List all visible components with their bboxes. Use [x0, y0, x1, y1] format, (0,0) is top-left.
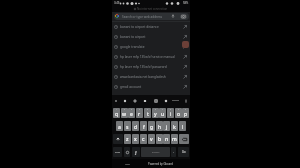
- staticText: 6: [155, 108, 157, 111]
- staticText: g: [150, 124, 154, 131]
- staticText: .: [173, 150, 174, 154]
- button[interactable]: v: [148, 134, 155, 144]
- button[interactable]: banani to airport: [112, 32, 190, 42]
- staticText: 9: [178, 108, 180, 111]
- staticText: 3:49: [114, 1, 120, 5]
- button[interactable]: Go: [178, 147, 189, 157]
- button[interactable]: 5: [144, 108, 151, 118]
- button[interactable]: google translate: [112, 42, 190, 52]
- staticText: 3: [131, 108, 133, 111]
- staticText: w: [122, 111, 127, 118]
- staticText: v: [150, 136, 153, 143]
- staticText: r: [138, 111, 141, 118]
- button[interactable]: h: [156, 121, 163, 131]
- button[interactable]: j: [163, 121, 170, 131]
- staticText: t: [147, 111, 149, 118]
- button[interactable]: 8: [167, 108, 174, 118]
- button[interactable]: www.bankasia.net bangladesh: [112, 72, 190, 82]
- staticText: www.bankasia.net bangladesh: [120, 75, 166, 79]
- button[interactable]: Keyboard tool 0: [114, 99, 118, 103]
- button[interactable]: n: [163, 134, 170, 144]
- button[interactable]: More options: [184, 99, 188, 103]
- staticText: English: [152, 151, 160, 154]
- staticText: h: [158, 124, 162, 131]
- staticText: b: [158, 136, 162, 143]
- staticText: l: [182, 124, 184, 131]
- button[interactable]: z: [124, 134, 131, 144]
- staticText: 8: [170, 108, 172, 111]
- button[interactable]: Keyboard tool 2: [133, 99, 137, 103]
- button[interactable]: gmail account: [112, 82, 190, 92]
- button[interactable]: c: [140, 134, 147, 144]
- button[interactable]: Keyboard tool 3: [143, 99, 147, 103]
- button[interactable]: x: [132, 134, 139, 144]
- button[interactable]: Voice search: [171, 14, 175, 18]
- staticText: 5: [147, 108, 149, 111]
- button[interactable]: Google Lens: [181, 14, 186, 19]
- button[interactable]: 1: [113, 108, 120, 118]
- button[interactable]: Symbols: [113, 147, 122, 157]
- button[interactable]: hp laser mfp 135w/cf password: [112, 62, 190, 72]
- staticText: p: [184, 111, 188, 118]
- button[interactable]: Emoji: [124, 147, 130, 157]
- staticText: e: [130, 111, 133, 118]
- button[interactable]: k: [171, 121, 178, 131]
- staticText: gmail account: [120, 85, 142, 89]
- button[interactable]: Backspace: [179, 134, 189, 144]
- button[interactable]: 2: [121, 108, 128, 118]
- staticText: j: [166, 124, 168, 131]
- staticText: ƒ: [135, 150, 137, 155]
- staticText: 58%: [183, 1, 189, 5]
- staticText: No internet connection: [137, 7, 168, 11]
- button[interactable]: m: [171, 134, 178, 144]
- staticText: hp laser mfp 135w/cf service manual: [120, 55, 175, 59]
- staticText: banani to airport: [120, 35, 146, 39]
- staticText: s: [126, 124, 129, 131]
- staticText: a: [118, 124, 121, 131]
- button[interactable]: 7: [159, 108, 166, 118]
- staticText: q: [115, 111, 119, 118]
- staticText: n: [165, 136, 169, 143]
- button[interactable]: hp laser mfp 135w/cf service manual: [112, 52, 190, 62]
- staticText: c: [142, 136, 145, 143]
- button[interactable]: f: [140, 121, 147, 131]
- button[interactable]: 3: [128, 108, 135, 118]
- button[interactable]: d: [132, 121, 139, 131]
- staticText: y: [154, 111, 157, 118]
- button[interactable]: a: [116, 121, 123, 131]
- staticText: Search or type web address: [122, 15, 163, 19]
- button[interactable]: Keyboard tool 1: [123, 99, 127, 103]
- button[interactable]: banani to airport distance: [112, 22, 190, 32]
- staticText: f: [143, 124, 145, 131]
- staticText: k: [173, 124, 176, 131]
- button[interactable]: 4: [136, 108, 143, 118]
- button[interactable]: b: [156, 134, 163, 144]
- staticText: d: [134, 124, 138, 131]
- staticText: m: [172, 136, 177, 143]
- button[interactable]: Handwriting: [132, 147, 140, 157]
- button[interactable]: s: [124, 121, 131, 131]
- staticText: ?123: [115, 151, 120, 154]
- staticText: 2: [124, 108, 126, 111]
- staticText: 0: [185, 108, 187, 111]
- button[interactable]: 0: [182, 108, 189, 118]
- button[interactable]: l: [179, 121, 186, 131]
- button[interactable]: Period: [171, 147, 176, 157]
- button[interactable]: 6: [152, 108, 159, 118]
- button[interactable]: Keyboard tool 4: [154, 99, 158, 103]
- staticText: u: [161, 111, 165, 118]
- staticText: 1: [116, 108, 118, 111]
- button[interactable]: Shift: [113, 134, 123, 144]
- button[interactable]: Space: [141, 147, 170, 157]
- staticText: hp laser mfp 135w/cf password: [120, 65, 167, 69]
- button[interactable]: [114, 13, 189, 20]
- button[interactable]: 9: [175, 108, 182, 118]
- staticText: Go: [182, 150, 186, 154]
- staticText: i: [170, 111, 172, 118]
- staticText: 7: [162, 108, 164, 111]
- staticText: Powered by Gboard: [148, 162, 173, 166]
- staticText: google translate: [120, 45, 145, 49]
- button[interactable]: g: [148, 121, 155, 131]
- button[interactable]: Keyboard tool 5: [164, 99, 168, 103]
